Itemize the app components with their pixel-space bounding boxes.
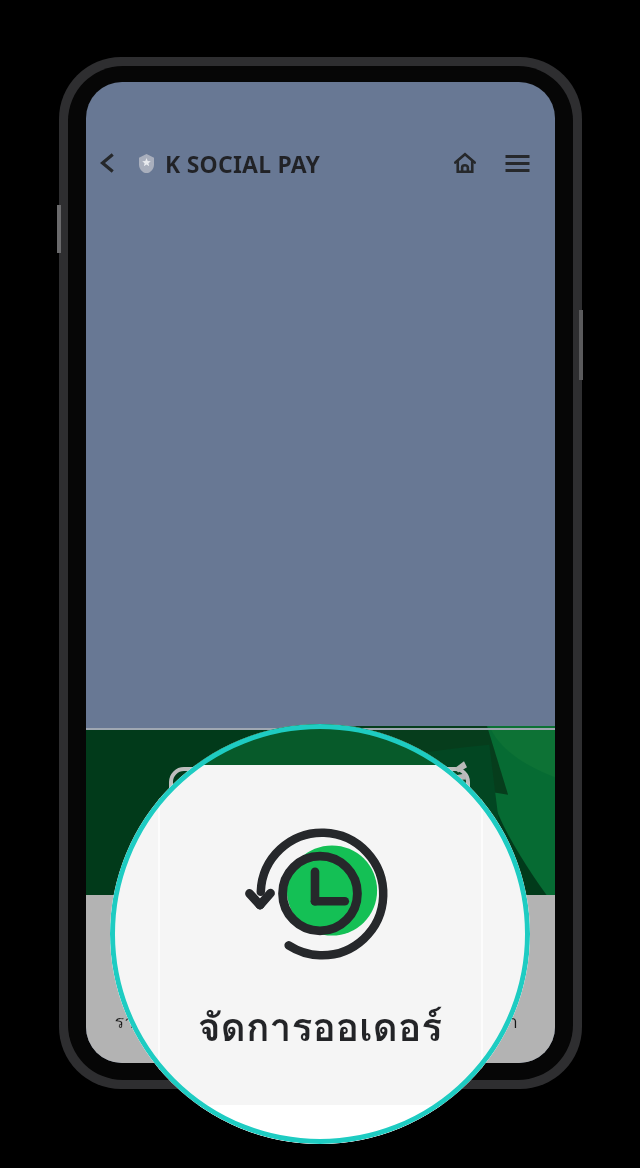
button[interactable]: ตั้งค่า — [438, 895, 555, 1063]
staticText: รายการ — [86, 1007, 204, 1036]
button[interactable] — [169, 767, 470, 879]
staticText: ตั้งค่า — [438, 1007, 555, 1036]
button[interactable]: ร้านค้า — [321, 895, 438, 1063]
staticText: ร้านค้า — [321, 1007, 438, 1036]
staticText: K SOCIAL PAY — [165, 148, 321, 179]
button[interactable]: Back — [87, 137, 127, 189]
staticText: จัดการออเดอร์ — [110, 996, 530, 1058]
button[interactable]: สแกนจ่าย — [204, 895, 321, 1063]
button[interactable]: Home — [439, 137, 491, 189]
staticText: สแกนจ่าย — [204, 1007, 321, 1036]
button[interactable]: รายการ — [86, 895, 204, 1063]
button[interactable]: Menu — [491, 137, 543, 189]
